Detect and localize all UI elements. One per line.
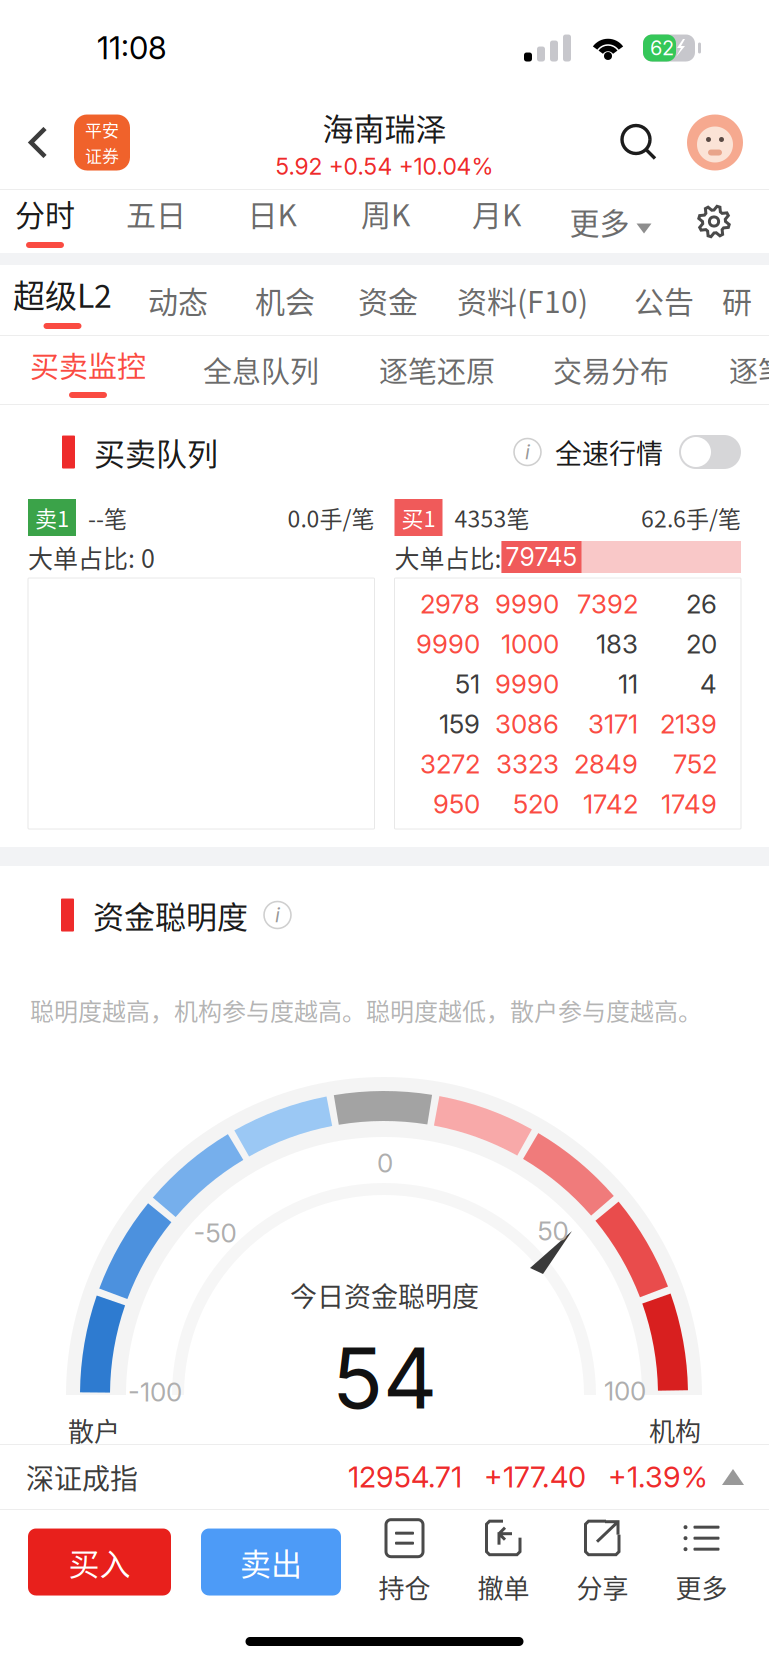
button[interactable]: 公告 — [634, 278, 694, 322]
button[interactable]: 研 — [722, 278, 752, 322]
button[interactable]: Back — [0, 124, 60, 160]
staticText: 日K — [247, 192, 296, 235]
staticText: 1742 — [583, 788, 638, 820]
button[interactable]: 日K — [247, 190, 296, 253]
staticText: --笔 — [88, 501, 127, 534]
staticText: 9990 — [495, 588, 559, 620]
staticText: 11:08 — [97, 29, 167, 67]
button[interactable]: 持仓 — [355, 1518, 454, 1606]
staticText: 研 — [722, 278, 752, 322]
staticText: 更多 — [569, 200, 629, 243]
button[interactable]: 资料(F10) — [457, 278, 588, 322]
button[interactable]: 五日 — [126, 190, 186, 253]
staticText: 0.0手/笔 — [287, 501, 374, 534]
staticText: -100 — [128, 1376, 182, 1408]
button[interactable]: 分时 — [15, 190, 75, 253]
staticText: 9990 — [416, 628, 480, 660]
staticText: 月K — [472, 192, 521, 235]
staticText: 散户 — [68, 1411, 120, 1449]
button[interactable]: 买入 — [28, 1528, 171, 1595]
staticText: 资料(F10) — [457, 278, 588, 322]
button[interactable]: 分享 — [553, 1518, 652, 1606]
staticText: 7392 — [577, 588, 638, 620]
staticText: -50 — [193, 1217, 236, 1249]
staticText: +1.39% — [608, 1459, 708, 1495]
staticText: 9990 — [495, 668, 559, 700]
staticText: 3272 — [420, 748, 480, 780]
staticText: 更多 — [675, 1568, 727, 1606]
staticText: 机会 — [255, 278, 315, 322]
button[interactable]: Chart settings — [697, 204, 769, 238]
staticText: 4353笔 — [454, 501, 529, 534]
staticText: 卖出 — [240, 1540, 302, 1584]
staticText: 54 — [332, 1327, 437, 1429]
staticText: 4 — [700, 668, 717, 700]
button[interactable]: 动态 — [148, 278, 208, 322]
staticText: 深证成指 — [26, 1457, 138, 1497]
button[interactable]: Full speed quotes — [679, 435, 741, 469]
staticText: 全息队列 — [203, 349, 319, 391]
staticText: 950 — [433, 788, 480, 820]
button[interactable]: 更多 — [652, 1518, 751, 1606]
button[interactable]: Profile — [659, 114, 769, 170]
button[interactable]: 超级L2 — [13, 265, 112, 335]
staticText: +177.40 — [484, 1459, 586, 1495]
staticText: 持仓 — [378, 1568, 430, 1606]
staticText: 公告 — [634, 278, 694, 322]
staticText: 五日 — [126, 192, 186, 235]
staticText: 逐笔 — [729, 349, 769, 391]
button[interactable]: 交易分布 — [553, 349, 669, 391]
button[interactable]: 更多 — [552, 190, 669, 253]
staticText: 520 — [513, 788, 559, 820]
staticText: 62 — [650, 36, 674, 60]
button[interactable]: 逐笔还原 — [379, 349, 495, 391]
button[interactable]: 买卖监控 — [30, 336, 146, 404]
staticText: 买卖队列 — [94, 430, 218, 474]
staticText: 752 — [673, 748, 717, 780]
staticText: 大单占比: — [394, 539, 501, 575]
staticText: 聪明度越高，机构参与度越高。聪明度越低，散户参与度越高。 — [30, 993, 702, 1027]
staticText: 50 — [537, 1215, 568, 1247]
staticText: 79745 — [505, 542, 577, 572]
staticText: 海南瑞泽 — [322, 105, 446, 149]
staticText: 今日资金聪明度 — [290, 1275, 479, 1315]
button[interactable]: 资金 — [358, 278, 418, 322]
staticText: 全速行情 — [555, 432, 663, 472]
staticText: 3171 — [588, 708, 638, 740]
staticText: 1000 — [501, 628, 559, 660]
staticText: 183 — [596, 628, 638, 660]
button[interactable]: Broker home — [60, 114, 130, 170]
staticText: 机构 — [649, 1411, 701, 1449]
staticText: 超级L2 — [13, 271, 112, 317]
staticText: 3086 — [495, 708, 559, 740]
staticText: 159 — [439, 708, 480, 740]
button[interactable]: 周K — [361, 190, 410, 253]
staticText: 62.6手/笔 — [641, 501, 741, 534]
button[interactable]: 机会 — [255, 278, 315, 322]
staticText: 卖1 — [35, 502, 69, 533]
staticText: 26 — [686, 588, 717, 620]
staticText: 5.92 +0.54 +10.04% — [275, 152, 493, 180]
staticText: 资金聪明度 — [93, 893, 248, 937]
staticText: 撤单 — [477, 1568, 529, 1606]
button[interactable]: 月K — [472, 190, 521, 253]
staticText: 20 — [686, 628, 717, 660]
staticText: 12954.71 — [348, 1459, 462, 1495]
staticText: 逐笔还原 — [379, 349, 495, 391]
staticText: 100 — [604, 1375, 646, 1407]
staticText: 资金 — [358, 278, 418, 322]
staticText: 买入 — [68, 1540, 130, 1584]
staticText: 平安 — [85, 117, 119, 142]
staticText: 2139 — [660, 708, 717, 740]
staticText: 2849 — [574, 748, 638, 780]
staticText: 交易分布 — [553, 349, 669, 391]
staticText: 动态 — [148, 278, 208, 322]
staticText: 大单占比: 0 — [28, 539, 155, 575]
button[interactable]: 逐笔 — [729, 349, 769, 391]
button[interactable]: 撤单 — [454, 1518, 553, 1606]
staticText: i — [525, 440, 530, 464]
button[interactable]: Search — [619, 122, 659, 162]
button[interactable]: 卖出 — [201, 1528, 341, 1595]
button[interactable]: 全息队列 — [203, 349, 319, 391]
staticText: 分享 — [576, 1568, 628, 1606]
